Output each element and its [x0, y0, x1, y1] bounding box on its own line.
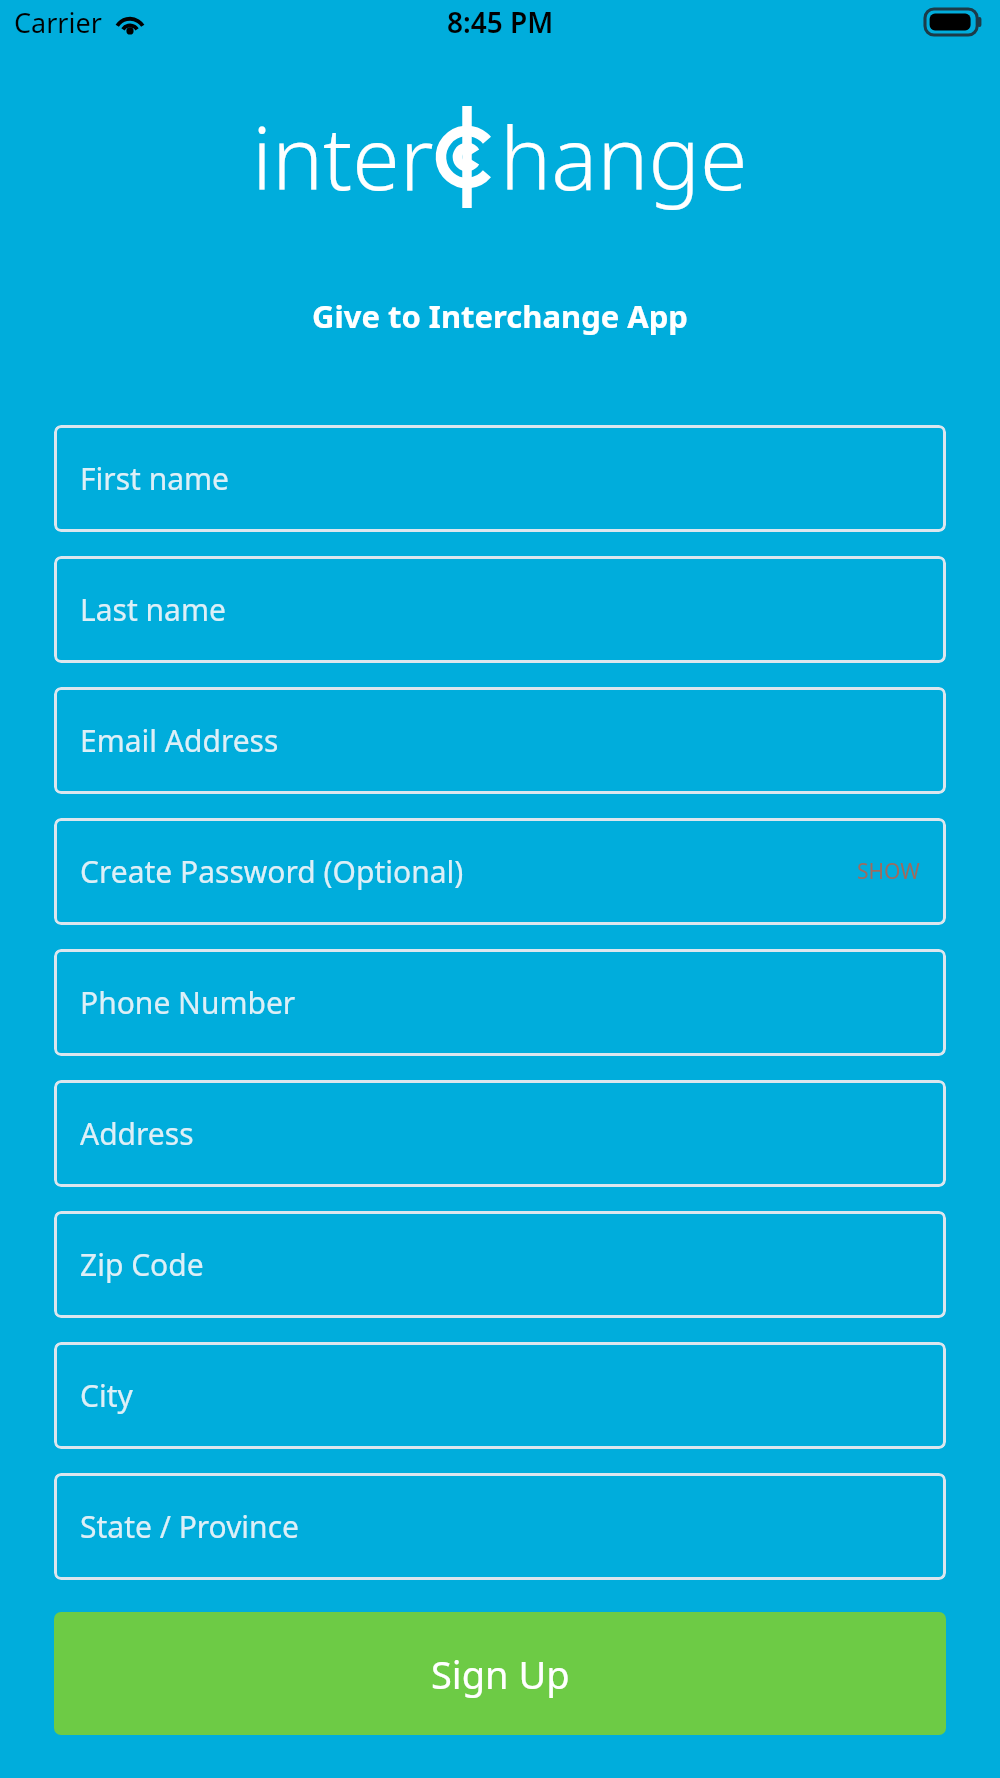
button[interactable]: Sign Up — [54, 1612, 946, 1735]
staticText: Sign Up — [431, 1648, 570, 1700]
staticText: Last name — [80, 589, 920, 630]
button[interactable]: Last name — [54, 556, 946, 663]
button[interactable]: State / Province — [54, 1473, 946, 1580]
button[interactable]: Address — [54, 1080, 946, 1187]
staticText: Phone Number — [80, 982, 920, 1023]
button[interactable]: First name — [54, 425, 946, 532]
button[interactable]: Create Password (Optional) — [54, 818, 946, 925]
staticText: inter — [252, 98, 434, 215]
button[interactable]: City — [54, 1342, 946, 1449]
staticText: Carrier — [14, 4, 102, 41]
staticText: Zip Code — [80, 1244, 920, 1285]
button[interactable]: Phone Number — [54, 949, 946, 1056]
staticText: Give to Interchange App — [312, 295, 688, 337]
staticText: Address — [80, 1113, 920, 1154]
staticText: First name — [80, 458, 920, 499]
other: Interchange cent logo — [436, 106, 498, 208]
button[interactable]: Zip Code — [54, 1211, 946, 1318]
staticText: Create Password (Optional) — [80, 851, 857, 892]
staticText: 8:45 PM — [447, 3, 554, 41]
staticText: SHOW — [857, 857, 920, 886]
other: Battery full — [924, 8, 982, 36]
staticText: Email Address — [80, 720, 920, 761]
button[interactable]: SHOW — [857, 857, 920, 886]
other: Wi-Fi signal — [114, 11, 146, 35]
staticText: State / Province — [80, 1506, 920, 1547]
staticText: hange — [500, 98, 748, 215]
staticText: City — [80, 1375, 920, 1416]
button[interactable]: Email Address — [54, 687, 946, 794]
